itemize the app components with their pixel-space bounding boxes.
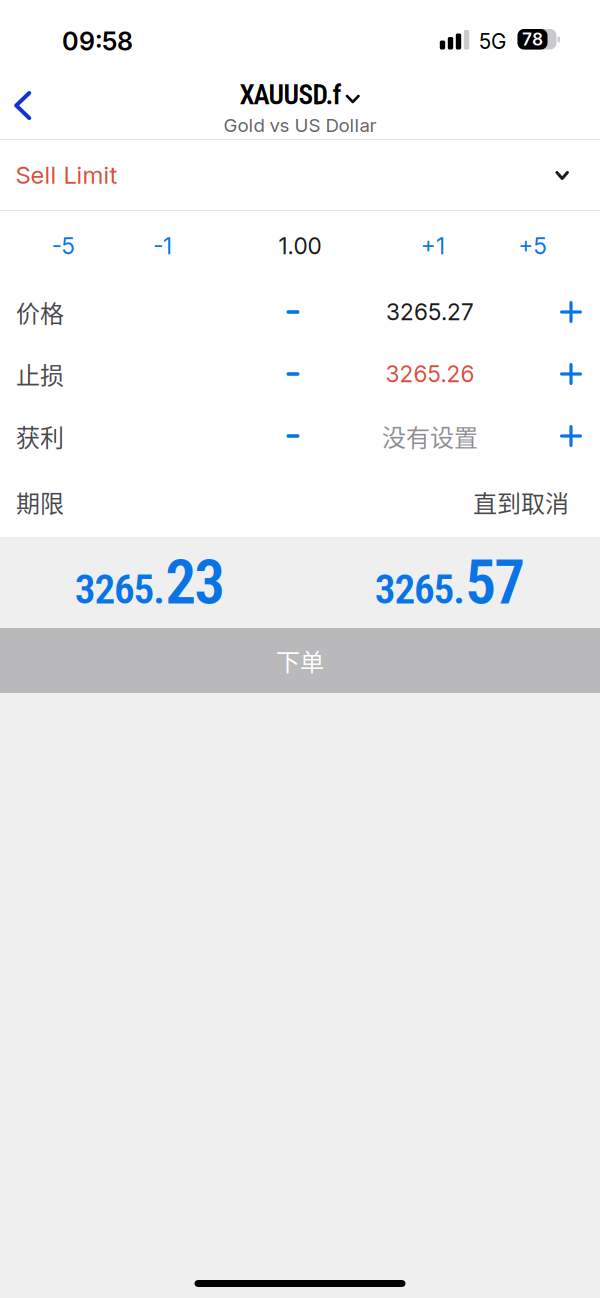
staticText: 下单 <box>276 643 324 678</box>
button[interactable]: -1 <box>126 211 199 281</box>
staticText: -5 <box>51 232 74 260</box>
button[interactable]: Back <box>0 81 47 130</box>
staticText: 3265.27 <box>386 298 474 326</box>
staticText: 57 <box>465 547 525 618</box>
button[interactable]: Sell Limit <box>0 140 600 210</box>
button[interactable]: Increase <box>543 411 599 461</box>
button[interactable]: +1 <box>401 211 465 281</box>
button[interactable]: -5 <box>0 211 126 281</box>
button[interactable]: Increase <box>543 349 599 399</box>
staticText: Sell Limit <box>15 160 117 189</box>
staticText: 价格 <box>16 295 64 329</box>
button[interactable]: Decrease <box>265 349 321 399</box>
button[interactable]: +5 <box>465 211 600 281</box>
staticText: 获利 <box>16 419 64 453</box>
staticText: -1 <box>153 232 172 260</box>
staticText: Gold vs US Dollar <box>223 114 376 137</box>
button[interactable]: Decrease <box>265 411 321 461</box>
staticText: 期限 <box>16 485 64 519</box>
staticText: 1.00 <box>278 232 321 260</box>
staticText: 09:58 <box>62 26 133 57</box>
staticText: +5 <box>518 232 546 260</box>
staticText: 3265. <box>75 565 165 613</box>
button[interactable]: Increase <box>543 287 599 337</box>
button[interactable]: 下单 <box>0 628 600 693</box>
staticText: 3265. <box>375 565 465 613</box>
button[interactable]: 期限 <box>0 467 600 537</box>
staticText: 5G <box>479 29 506 54</box>
staticText: 3265.26 <box>385 360 474 388</box>
staticText: 23 <box>165 547 225 618</box>
staticText: 没有设置 <box>382 419 478 453</box>
staticText: XAUUSD.f <box>240 79 342 111</box>
staticText: 止损 <box>16 357 64 391</box>
staticText: 78 <box>522 29 543 50</box>
staticText: 直到取消 <box>473 485 569 519</box>
staticText: +1 <box>421 232 445 260</box>
button[interactable]: Decrease <box>265 287 321 337</box>
